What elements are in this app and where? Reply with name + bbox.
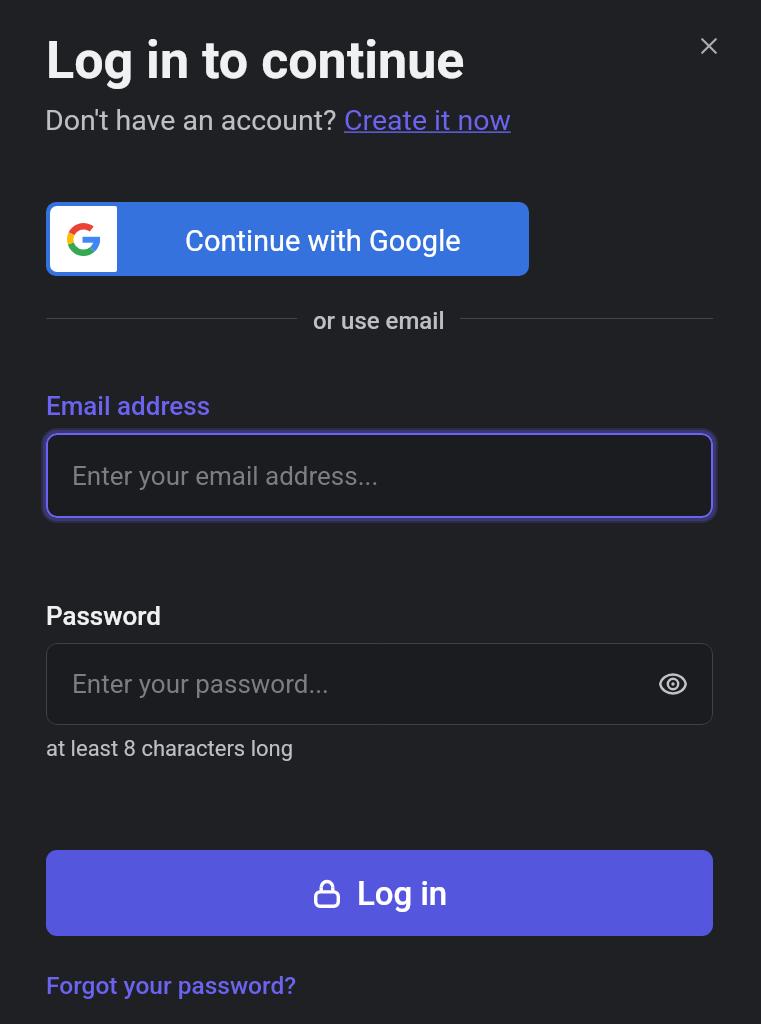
button[interactable]: Create it now xyxy=(344,104,511,137)
button[interactable]: Enter your password... xyxy=(46,643,713,725)
button[interactable]: Close xyxy=(689,26,729,66)
button[interactable]: Continue with Google xyxy=(46,202,529,276)
staticText: Enter your password... xyxy=(72,669,329,699)
button[interactable]: Enter your email address... xyxy=(46,433,713,518)
staticText: Create it now xyxy=(344,104,511,137)
staticText: Forgot your password? xyxy=(46,971,297,1000)
staticText: or use email xyxy=(313,307,445,335)
staticText: Enter your email address... xyxy=(72,461,379,491)
staticText: Email address xyxy=(46,391,211,421)
staticText: at least 8 characters long xyxy=(46,736,294,762)
staticText: Don't have an account? xyxy=(45,104,344,137)
staticText: Log in to continue xyxy=(46,30,465,91)
staticText: Continue with Google xyxy=(185,224,461,258)
button[interactable]: Forgot your password? xyxy=(44,971,299,1000)
staticText: Password xyxy=(46,601,161,631)
staticText: Log in xyxy=(357,874,448,913)
button[interactable]: Log in xyxy=(46,850,713,936)
button[interactable]: Show password xyxy=(653,664,693,704)
